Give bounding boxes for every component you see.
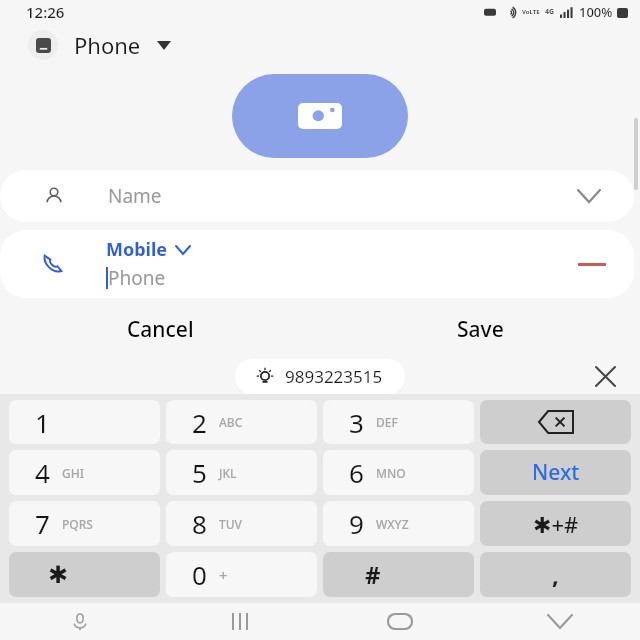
staticText: , <box>552 558 559 591</box>
staticText: 1 <box>35 405 50 440</box>
button[interactable]: 8 <box>166 501 317 546</box>
staticText: 12:26 <box>26 2 65 22</box>
staticText: ✱+# <box>533 509 579 539</box>
staticText: 7 <box>35 506 50 541</box>
staticText: DEF <box>376 414 398 430</box>
staticText: 100% <box>579 3 613 21</box>
staticText: 0 <box>192 557 207 592</box>
button[interactable]: Mobile <box>106 237 190 262</box>
button[interactable]: # <box>323 552 474 597</box>
button[interactable]: Hide keyboard <box>480 603 640 640</box>
button[interactable]: ✱ <box>9 552 160 597</box>
staticText: 5 <box>192 455 207 490</box>
staticText: 4G <box>545 7 555 17</box>
button[interactable]: Recents <box>160 603 320 640</box>
button[interactable]: 9893223515 <box>235 359 405 394</box>
staticText: 3 <box>349 405 364 440</box>
button[interactable]: Phone <box>74 30 171 60</box>
staticText: ABC <box>219 414 243 430</box>
staticText: 9 <box>349 506 364 541</box>
staticText: VoLTE <box>522 8 540 16</box>
button[interactable]: 2 <box>166 400 317 444</box>
staticText: Phone <box>74 30 141 60</box>
button[interactable]: 7 <box>9 501 160 546</box>
button[interactable]: Close suggestion <box>588 359 622 393</box>
button[interactable]: Mobile <box>0 230 634 298</box>
staticText: 6 <box>349 455 364 490</box>
button[interactable]: Home <box>320 603 480 640</box>
staticText: MNO <box>376 465 406 481</box>
button[interactable]: Add photo <box>232 74 408 158</box>
button[interactable]: Backspace <box>480 400 631 444</box>
staticText: Cancel <box>127 315 194 344</box>
button[interactable]: 1 <box>9 400 160 444</box>
staticText: 4 <box>35 455 50 490</box>
button[interactable]: 0 <box>166 552 317 597</box>
button[interactable]: Save <box>320 308 640 350</box>
staticText: Phone <box>108 265 166 291</box>
button[interactable]: Next <box>480 450 631 495</box>
staticText: Next <box>532 458 580 487</box>
button[interactable]: ✱+# <box>480 501 631 546</box>
staticText: 2 <box>192 405 207 440</box>
button[interactable]: Name <box>0 170 634 222</box>
staticText: WXYZ <box>376 516 409 532</box>
button[interactable]: Remove phone <box>572 244 612 284</box>
staticText: PQRS <box>62 516 93 532</box>
button[interactable]: 5 <box>166 450 317 495</box>
staticText: Mobile <box>106 237 168 262</box>
button[interactable]: 4 <box>9 450 160 495</box>
staticText: Save <box>457 315 504 344</box>
staticText: TUV <box>219 516 242 532</box>
button[interactable]: 9 <box>323 501 474 546</box>
staticText: Name <box>108 183 162 209</box>
staticText: JKL <box>219 465 237 481</box>
button[interactable]: 6 <box>323 450 474 495</box>
staticText: + <box>219 565 228 585</box>
button[interactable]: , <box>480 552 631 597</box>
staticText: GHI <box>62 465 84 481</box>
button[interactable]: Cancel <box>0 308 320 350</box>
button[interactable]: Voice input <box>0 603 160 640</box>
staticText: ✱ <box>48 561 69 589</box>
staticText: 8 <box>192 506 207 541</box>
staticText: 9893223515 <box>285 365 383 388</box>
staticText: # <box>365 558 381 591</box>
button[interactable]: 3 <box>323 400 474 444</box>
